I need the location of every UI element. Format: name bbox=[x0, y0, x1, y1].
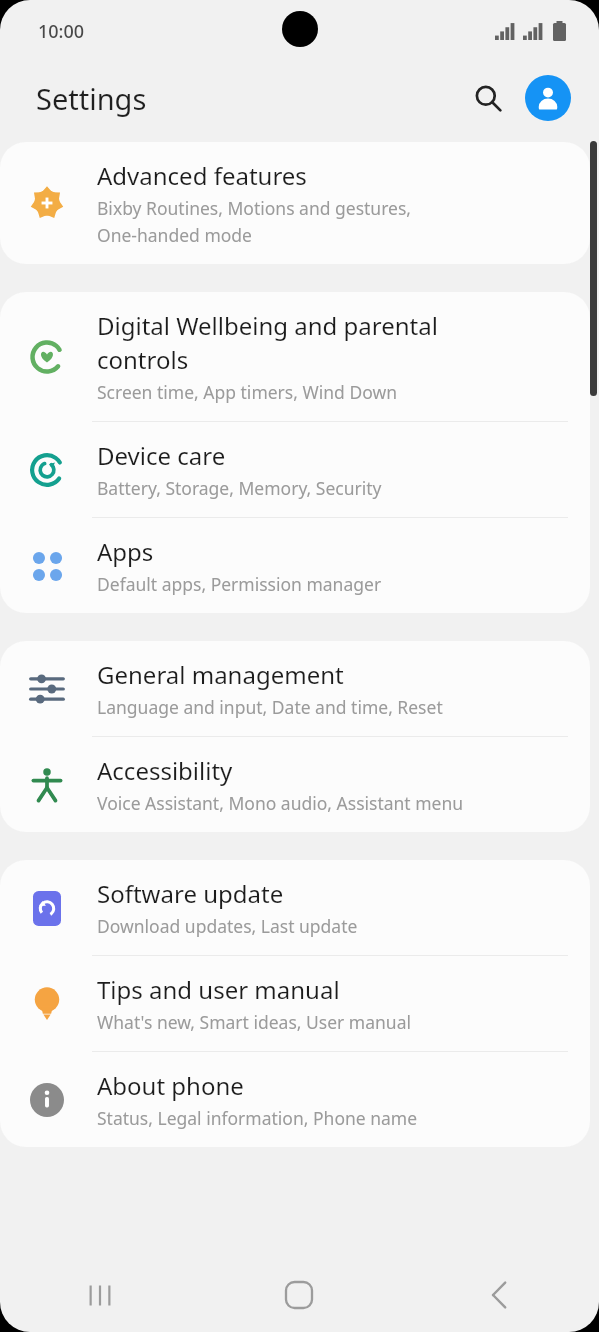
staticText: Tips and user manual bbox=[97, 973, 340, 1006]
staticText: Settings bbox=[36, 79, 147, 118]
staticText: Language and input, Date and time, Reset bbox=[97, 695, 443, 719]
button[interactable]: Home bbox=[199, 1258, 399, 1332]
staticText: 10:00 bbox=[38, 19, 85, 44]
button[interactable]: Search bbox=[463, 73, 513, 123]
button[interactable]: Account bbox=[525, 75, 571, 121]
button[interactable]: Digital Wellbeing and parental controls bbox=[0, 292, 590, 421]
staticText: Device care bbox=[97, 439, 226, 472]
staticText: What's new, Smart ideas, User manual bbox=[97, 1010, 411, 1034]
staticText: Battery, Storage, Memory, Security bbox=[97, 476, 382, 500]
staticText: Digital Wellbeing and parental controls bbox=[97, 309, 438, 376]
button[interactable]: Device care bbox=[0, 422, 590, 517]
button[interactable]: About phone bbox=[0, 1052, 590, 1147]
button[interactable]: General management bbox=[0, 641, 590, 736]
staticText: Voice Assistant, Mono audio, Assistant m… bbox=[97, 791, 464, 815]
staticText: Bixby Routines, Motions and gestures, On… bbox=[97, 196, 412, 247]
button[interactable]: Tips and user manual bbox=[0, 956, 590, 1051]
staticText: Accessibility bbox=[97, 754, 233, 787]
button[interactable]: Accessibility bbox=[0, 737, 590, 832]
staticText: General management bbox=[97, 658, 344, 691]
button[interactable]: Recents bbox=[0, 1258, 199, 1332]
staticText: Advanced features bbox=[97, 159, 307, 192]
staticText: Software update bbox=[97, 877, 284, 910]
button[interactable]: Software update bbox=[0, 860, 590, 955]
staticText: Download updates, Last update bbox=[97, 914, 358, 938]
staticText: Status, Legal information, Phone name bbox=[97, 1106, 418, 1130]
staticText: Apps bbox=[97, 535, 154, 568]
staticText: About phone bbox=[97, 1069, 244, 1102]
button[interactable]: Apps bbox=[0, 518, 590, 613]
staticText: Default apps, Permission manager bbox=[97, 572, 382, 596]
staticText: Screen time, App timers, Wind Down bbox=[97, 380, 397, 404]
button[interactable]: Back bbox=[399, 1258, 599, 1332]
button[interactable]: Advanced features bbox=[0, 142, 590, 264]
